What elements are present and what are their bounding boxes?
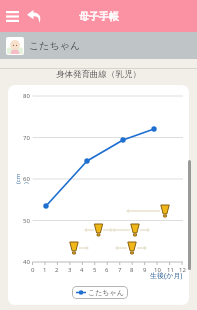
- button[interactable]: Menu: [0, 0, 24, 32]
- staticText: 1: [43, 266, 47, 274]
- staticText: 3: [68, 266, 72, 274]
- staticText: こたちゃん: [29, 39, 81, 52]
- staticText: 身体発育曲線（乳児）: [56, 69, 141, 80]
- staticText: 8: [130, 266, 134, 274]
- staticText: 生後(か月): [150, 271, 183, 281]
- staticText: 12: [179, 266, 186, 274]
- staticText: 2: [55, 266, 59, 274]
- staticText: 7: [118, 266, 122, 274]
- button[interactable]: Back: [24, 0, 44, 32]
- staticText: 80: [23, 92, 30, 100]
- staticText: こたちゃん: [88, 288, 124, 297]
- staticText: (cm): [14, 172, 30, 184]
- staticText: 40: [23, 258, 30, 266]
- staticText: 11: [167, 266, 174, 274]
- staticText: 9: [143, 266, 147, 274]
- staticText: 60: [23, 175, 30, 183]
- staticText: 5: [93, 266, 97, 274]
- staticText: 70: [23, 134, 30, 142]
- staticText: 0: [31, 266, 35, 274]
- staticText: 4: [80, 266, 84, 274]
- button[interactable]: こたちゃん: [0, 32, 197, 59]
- staticText: 10: [154, 266, 161, 274]
- staticText: 母子手帳: [79, 10, 119, 23]
- staticText: 6: [105, 266, 109, 274]
- button[interactable]: こたちゃん: [72, 286, 128, 299]
- staticText: 50: [23, 217, 30, 225]
